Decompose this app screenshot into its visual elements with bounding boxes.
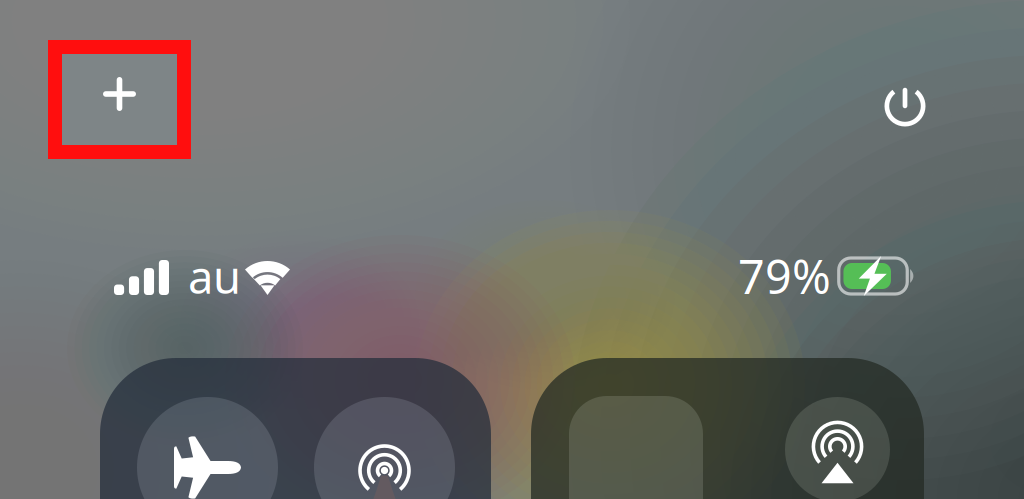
button[interactable]: Power off <box>874 75 936 137</box>
button[interactable]: Airplane Mode <box>137 397 278 499</box>
button[interactable]: AirDrop <box>314 397 455 499</box>
button[interactable]: Now Playing <box>569 396 703 499</box>
staticText: au <box>188 246 241 306</box>
staticText: 79% <box>738 245 831 307</box>
button[interactable]: AirPlay <box>785 397 890 499</box>
button[interactable]: Add a control <box>48 40 191 159</box>
